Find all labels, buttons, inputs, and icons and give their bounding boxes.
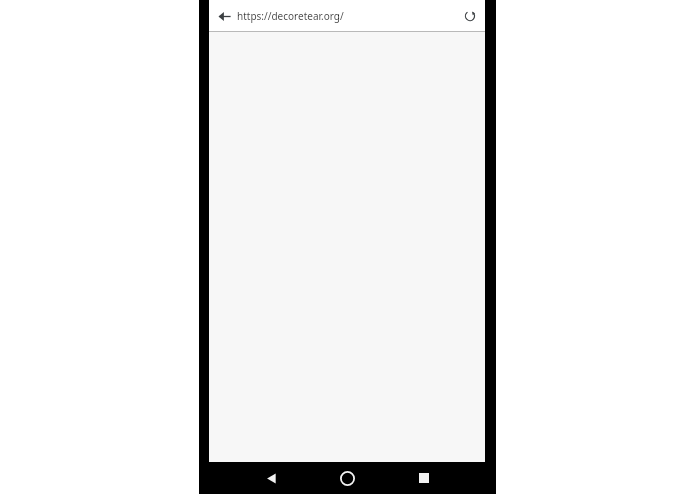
button[interactable]: Reload page [456,2,484,30]
button[interactable]: Navigate back [210,2,238,30]
button[interactable]: Home [331,462,363,494]
staticText: https://decoretear.org/ [237,9,452,23]
button[interactable]: Recent apps [408,462,440,494]
button[interactable]: Back [255,462,287,494]
